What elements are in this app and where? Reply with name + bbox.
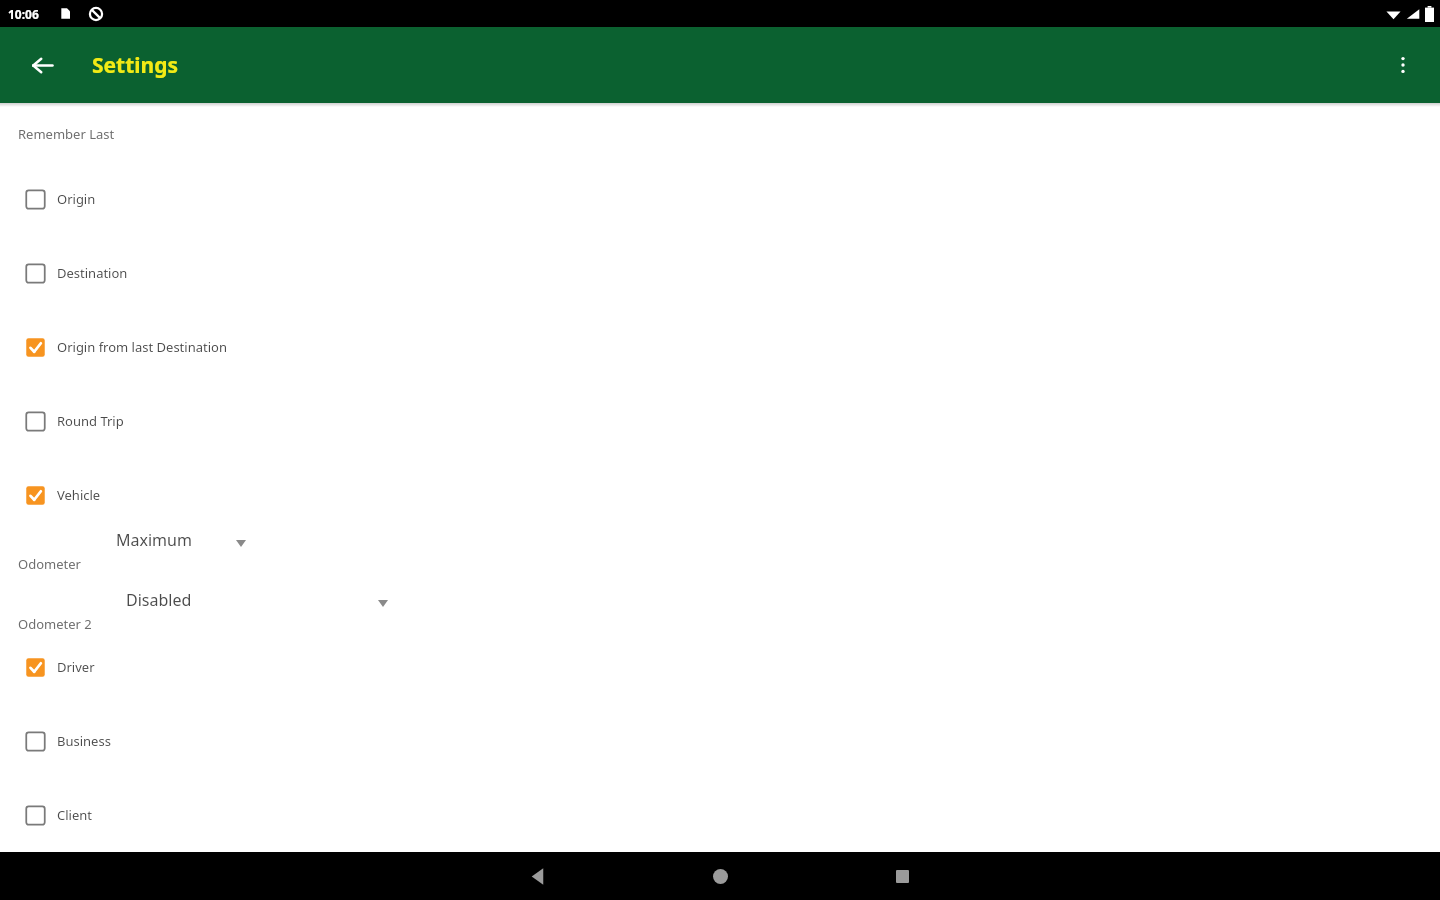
button[interactable]: Origin from last Destination xyxy=(0,323,1440,371)
staticText: Settings xyxy=(92,51,179,80)
button[interactable]: Client xyxy=(0,791,1440,839)
staticText: Destination xyxy=(57,264,128,282)
staticText: Odometer 2 xyxy=(18,615,92,633)
staticText: Maximum xyxy=(116,529,192,551)
button[interactable]: Round Trip xyxy=(0,397,1440,445)
button[interactable]: Back xyxy=(514,852,562,900)
staticText: Disabled xyxy=(126,589,192,611)
button[interactable]: Business xyxy=(0,717,1440,765)
button[interactable]: Destination xyxy=(0,249,1440,297)
staticText: Origin xyxy=(57,190,96,208)
button[interactable]: Back xyxy=(20,43,64,87)
button[interactable]: Vehicle xyxy=(0,471,1440,519)
button[interactable]: Recent apps xyxy=(878,852,926,900)
button[interactable]: Odometer 2 xyxy=(0,579,1440,639)
button[interactable]: More options xyxy=(1380,42,1426,88)
staticText: Vehicle xyxy=(57,486,101,504)
staticText: 10:06 xyxy=(8,6,39,22)
staticText: Driver xyxy=(57,658,95,676)
staticText: Round Trip xyxy=(57,412,124,430)
button[interactable]: Home xyxy=(696,852,744,900)
staticText: Client xyxy=(57,806,92,824)
button[interactable]: Origin xyxy=(0,175,1440,223)
staticText: Odometer xyxy=(18,555,81,573)
button[interactable]: Driver xyxy=(0,643,1440,691)
staticText: Business xyxy=(57,732,111,750)
button[interactable]: Odometer xyxy=(0,519,1440,579)
staticText: Origin from last Destination xyxy=(57,338,227,356)
staticText: Remember Last xyxy=(18,125,115,143)
